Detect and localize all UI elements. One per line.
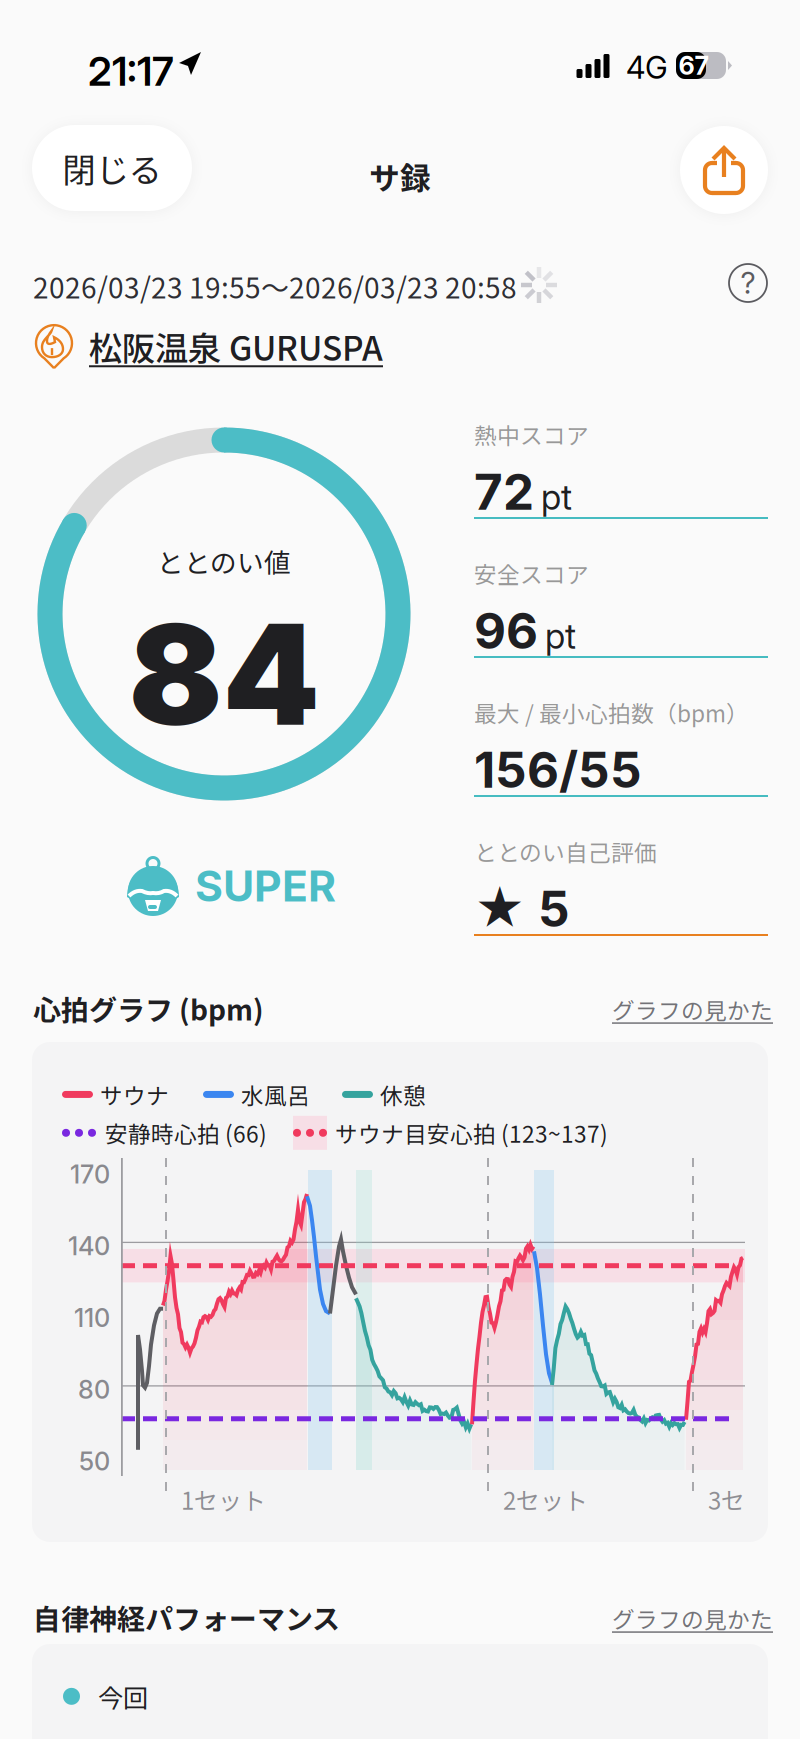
staticText: 84 [128,590,319,758]
staticText: グラフの見かた [612,1602,773,1635]
staticText: 21:17 [88,47,174,95]
staticText: ? [740,265,755,301]
staticText: サウナ目安心拍 (123~137) [335,1116,608,1149]
staticText: グラフの見かた [612,993,773,1026]
staticText: 80 [78,1374,110,1405]
staticText: 72 [474,462,534,522]
staticText: 3セ [708,1482,745,1517]
staticText: 2026/03/23 19:55〜2026/03/23 20:58 [33,266,517,306]
staticText: サ録 [369,154,431,198]
staticText: SUPER [195,860,336,912]
staticText: 最大 / 最小心拍数（bpm） [474,696,749,729]
staticText: 96 [474,601,538,661]
button[interactable]: グラフの見かた [612,993,773,1026]
staticText: 140 [68,1231,110,1261]
button[interactable]: 松阪温泉 GURUSPA [33,322,383,370]
staticText: 170 [70,1159,110,1190]
staticText: 67 [678,50,709,81]
staticText: 水風呂 [241,1078,310,1111]
staticText: サウナ [100,1078,169,1111]
staticText: 閉じる [62,144,161,192]
button[interactable]: Help [729,264,767,302]
staticText: pt [541,476,572,518]
button[interactable]: グラフの見かた [612,1602,773,1635]
staticText: 4G [626,49,668,86]
staticText: 110 [74,1302,110,1333]
staticText: 自律神経パフォーマンス [33,1597,340,1637]
staticText: 心拍グラフ (bpm) [33,988,264,1028]
staticText: 2セット [503,1482,588,1517]
staticText: 安全スコア [474,557,589,590]
staticText: ★ 5 [474,879,570,939]
button[interactable]: 閉じる [32,125,192,211]
staticText: ととのい自己評価 [474,835,657,868]
staticText: 1セット [181,1482,266,1517]
staticText: 松阪温泉 GURUSPA [89,322,383,370]
button[interactable]: Share [680,126,768,214]
staticText: 休憩 [380,1078,426,1111]
staticText: 156/55 [474,740,642,800]
staticText: pt [545,615,576,657]
staticText: 50 [79,1446,110,1477]
staticText: 今回 [98,1678,148,1715]
staticText: ととのい値 [157,542,291,580]
staticText: 熱中スコア [474,418,589,451]
staticText: 安静時心拍 (66) [105,1116,267,1149]
